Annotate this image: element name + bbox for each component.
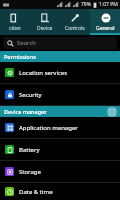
staticText: Device [37, 25, 53, 32]
button[interactable]: Date & time [0, 183, 120, 200]
staticText: 79% [81, 1, 91, 8]
staticText: General [96, 25, 115, 32]
button[interactable]: ction [0, 9, 30, 35]
button[interactable]: Storage [0, 161, 120, 182]
button[interactable]: Location services [0, 62, 120, 83]
staticText: Security [19, 91, 42, 99]
button[interactable]: Apps grid [107, 107, 117, 117]
button[interactable]: Device [30, 9, 60, 35]
staticText: Location services [19, 69, 68, 77]
staticText: Search [17, 39, 36, 47]
staticText: 1:07 PM [99, 1, 118, 8]
button[interactable]: Search [3, 37, 117, 49]
staticText: Application manager [19, 124, 78, 132]
button[interactable]: Battery [0, 139, 120, 160]
staticText: Storage [19, 168, 41, 176]
staticText: Device manager [4, 108, 47, 115]
staticText: Permissions [4, 53, 36, 60]
button[interactable]: Application manager [0, 117, 120, 138]
staticText: Battery [19, 146, 40, 154]
staticText: ction [9, 25, 21, 32]
button[interactable]: Security [0, 84, 120, 105]
staticText: Controls [65, 25, 85, 32]
button[interactable]: Controls [60, 9, 90, 35]
button[interactable]: General [90, 9, 120, 35]
staticText: Date & time [19, 188, 53, 196]
